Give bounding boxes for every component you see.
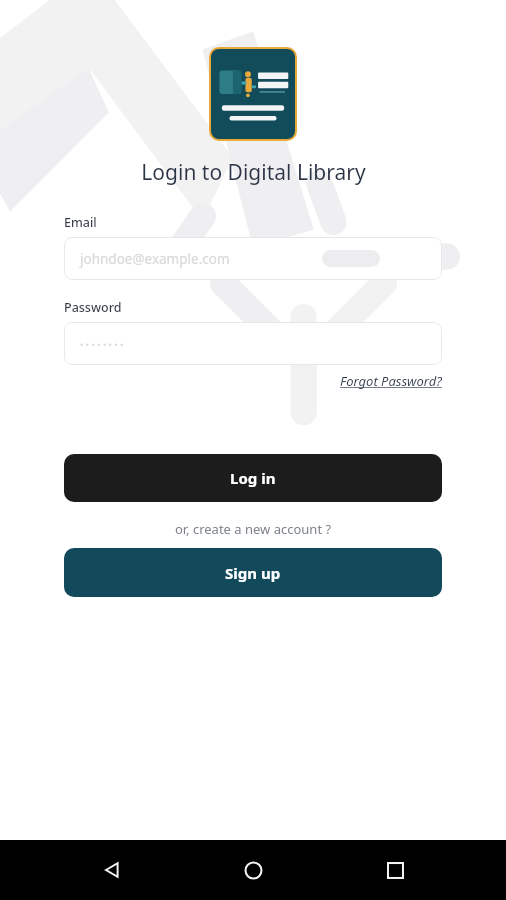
staticText: Email: [64, 214, 97, 231]
staticText: Login to Digital Library: [141, 158, 366, 187]
staticText: Log in: [230, 468, 276, 488]
button[interactable]: Home: [223, 840, 283, 900]
button[interactable]: Recent apps: [365, 840, 425, 900]
button[interactable]: johndoe@example.com: [64, 237, 442, 280]
staticText: Password: [64, 299, 122, 316]
button[interactable]: • • • • • • • •: [64, 322, 442, 365]
staticText: Sign up: [225, 563, 281, 583]
staticText: johndoe@example.com: [80, 250, 230, 268]
staticText: or, create a new account ?: [64, 520, 442, 538]
button[interactable]: Sign up: [64, 548, 442, 597]
staticText: • • • • • • • •: [80, 338, 124, 350]
button[interactable]: Log in: [64, 454, 442, 502]
button[interactable]: Back: [82, 840, 142, 900]
button[interactable]: Forgot Password?: [340, 372, 442, 390]
staticText: Forgot Password?: [340, 372, 442, 390]
